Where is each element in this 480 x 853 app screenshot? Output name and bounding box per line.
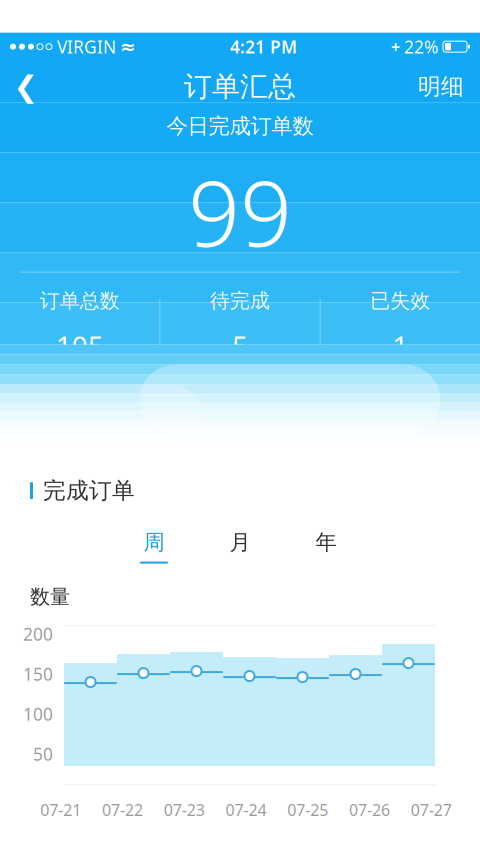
button[interactable]: Back [0,62,52,112]
staticText: 月 [229,529,250,556]
staticText: 今日完成订单数 [166,113,313,139]
staticText: 100 [23,703,53,726]
staticText: 4:21 PM [230,35,297,58]
staticText: 07-22 [102,799,143,820]
staticText: 22% [404,35,438,58]
staticText: 07-24 [225,799,266,820]
button[interactable]: 周 [119,526,189,566]
staticText: 周 [143,529,164,556]
staticText: VIRGIN [57,35,116,58]
button[interactable]: 明细 [402,62,480,112]
staticText: 07-26 [349,799,390,820]
staticText: 50 [33,743,53,766]
staticText: ❮ [13,70,38,103]
staticText: 105 [56,327,104,364]
staticText: 07-27 [411,799,452,820]
button[interactable]: 月 [205,526,275,566]
staticText: 99 [188,151,292,272]
staticText: 1 [392,327,408,364]
staticText: 150 [23,663,53,686]
staticText: 07-23 [164,799,205,820]
button[interactable]: 年 [291,526,361,566]
staticText: 5 [232,327,248,364]
staticText: 订单总数 [40,289,120,313]
staticText: 订单汇总 [184,69,296,104]
staticText: 年 [315,529,336,556]
staticText: 200 [23,623,53,646]
staticText: 数量 [30,584,70,609]
staticText: 明细 [418,73,464,101]
staticText: ≈ [120,36,136,57]
staticText: 07-21 [40,799,81,820]
staticText: 完成订单 [43,477,135,504]
staticText: 已失效 [370,289,430,313]
staticText: 待完成 [210,289,270,313]
staticText: 07-25 [287,799,328,820]
staticText: + [391,36,400,57]
